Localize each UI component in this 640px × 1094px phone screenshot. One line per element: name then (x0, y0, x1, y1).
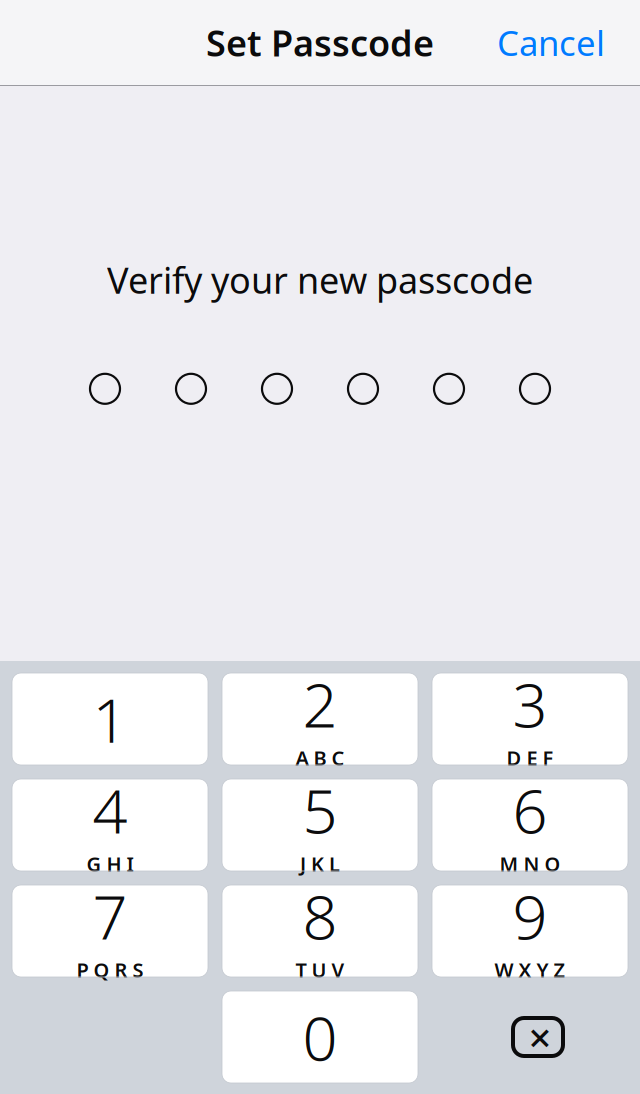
staticText: M N O (499, 850, 560, 877)
staticText: 0 (302, 996, 337, 1078)
staticText: J K L (300, 850, 340, 877)
button[interactable]: 5 (222, 779, 418, 871)
staticText: P Q R S (76, 956, 143, 983)
staticText: 2 (302, 663, 337, 744)
staticText: D E F (506, 744, 553, 771)
staticText: × (528, 1010, 551, 1063)
staticText: A B C (295, 744, 344, 771)
button[interactable]: 4 (12, 779, 208, 871)
staticText: T U V (295, 956, 344, 983)
button[interactable]: 3 (432, 673, 628, 765)
staticText: 7 (92, 875, 127, 956)
staticText: Set Passcode (206, 19, 434, 66)
staticText: 5 (302, 769, 337, 850)
button[interactable]: 7 (12, 885, 208, 977)
staticText: 4 (92, 769, 127, 850)
staticText: G H I (86, 850, 133, 877)
button[interactable]: Cancel (483, 9, 619, 75)
button[interactable]: 8 (222, 885, 418, 977)
staticText: 6 (512, 769, 547, 850)
staticText: 1 (92, 678, 127, 760)
button[interactable]: 9 (432, 885, 628, 977)
button[interactable]: 6 (432, 779, 628, 871)
staticText: Cancel (497, 19, 605, 65)
button[interactable]: Delete (432, 991, 628, 1083)
button[interactable]: 2 (222, 673, 418, 765)
staticText: 3 (512, 663, 547, 744)
button[interactable]: 1 (12, 673, 208, 765)
staticText: 9 (512, 875, 547, 956)
staticText: Verify your new passcode (107, 256, 533, 304)
staticText: W X Y Z (494, 956, 565, 983)
staticText: 8 (302, 875, 337, 956)
button[interactable]: 0 (222, 991, 418, 1083)
